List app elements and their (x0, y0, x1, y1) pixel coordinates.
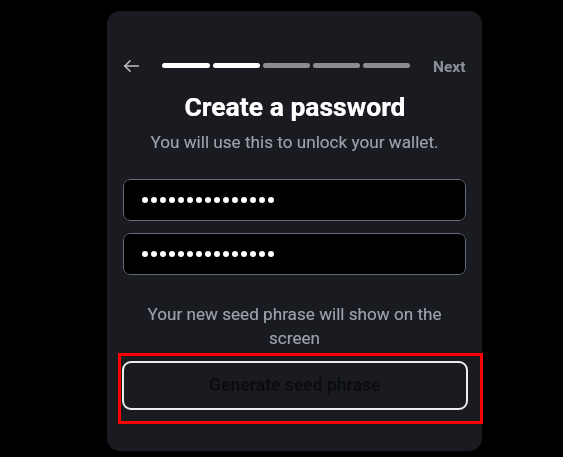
staticText: You will use this to unlock your wallet. (150, 132, 439, 152)
button[interactable]: Next (425, 51, 473, 82)
staticText: Generate seed phrase (209, 375, 381, 396)
button[interactable] (123, 233, 466, 275)
staticText: Create a password (184, 91, 406, 122)
button[interactable]: Generate seed phrase (122, 361, 468, 410)
button[interactable]: Back (113, 47, 150, 84)
staticText: Your new seed phrase will show on the sc… (137, 304, 452, 349)
button[interactable] (123, 179, 466, 221)
staticText: Next (433, 58, 466, 76)
